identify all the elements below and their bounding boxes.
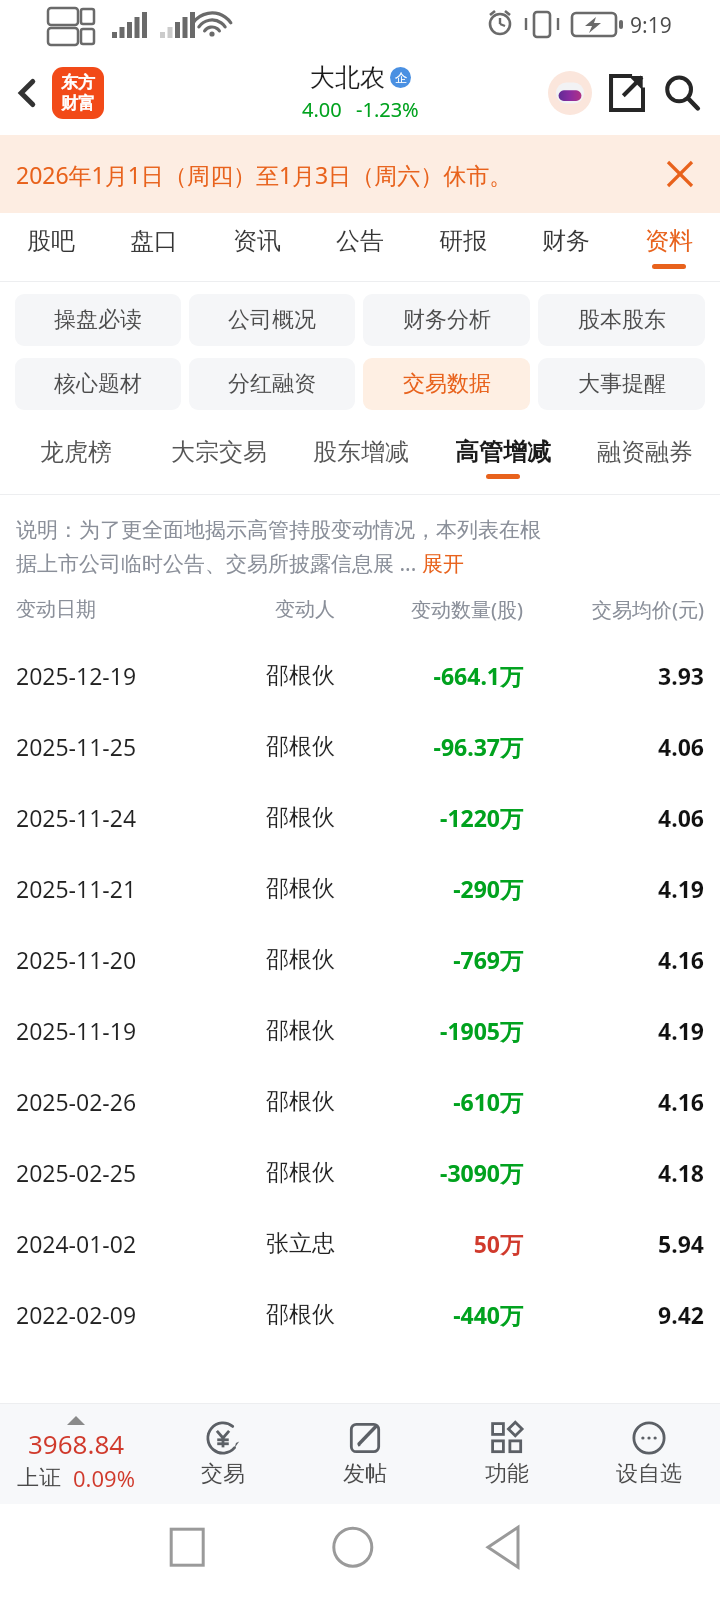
button[interactable]: 2024-01-02: [0, 1208, 720, 1279]
button[interactable]: 功能: [436, 1404, 578, 1504]
staticText: 大宗交易: [171, 437, 267, 467]
button[interactable]: 公告: [308, 213, 411, 281]
staticText: 50万: [335, 1228, 523, 1259]
staticText: -1.23%: [356, 96, 419, 123]
button[interactable]: 公司概况: [189, 294, 355, 346]
button[interactable]: 资料: [617, 213, 720, 281]
staticText: 3968.84: [28, 1426, 125, 1461]
staticText: 展开: [422, 551, 464, 577]
button[interactable]: 交易数据: [363, 358, 530, 410]
staticText: 邵根伙: [210, 1016, 335, 1045]
button[interactable]: 2025-11-25: [0, 711, 720, 782]
button[interactable]: 设自选: [578, 1404, 720, 1504]
staticText: -610万: [335, 1086, 523, 1117]
staticText: 9:19: [630, 11, 672, 40]
staticText: -1905万: [335, 1015, 523, 1046]
button[interactable]: 3968.84: [0, 1404, 152, 1504]
staticText: 研报: [439, 226, 487, 256]
button[interactable]: 高管增减: [432, 422, 574, 494]
staticText: 股东增减: [313, 437, 409, 467]
staticText: 4.06: [523, 802, 704, 833]
button[interactable]: 2025-12-19: [0, 640, 720, 711]
staticText: 2025-11-20: [16, 944, 210, 975]
button[interactable]: 2025-11-20: [0, 924, 720, 995]
button[interactable]: East Money: [52, 67, 104, 119]
button[interactable]: 2025-11-24: [0, 782, 720, 853]
button[interactable]: 交易: [152, 1404, 294, 1504]
staticText: -96.37万: [335, 731, 523, 762]
button[interactable]: 股本股东: [538, 294, 705, 346]
staticText: 大北农: [310, 62, 385, 93]
staticText: 9.42: [523, 1299, 704, 1330]
staticText: 高管增减: [455, 437, 551, 467]
staticText: 龙虎榜: [40, 437, 112, 467]
staticText: 财富: [61, 93, 95, 114]
button[interactable]: 大事提醒: [538, 358, 705, 410]
button[interactable]: 大宗交易: [147, 422, 290, 494]
staticText: 据上市公司临时公告、交易所披露信息展 ...: [16, 549, 422, 578]
button[interactable]: 操盘必读: [15, 294, 181, 346]
button[interactable]: 龙虎榜: [4, 422, 147, 494]
staticText: 邵根伙: [210, 1087, 335, 1116]
staticText: 邵根伙: [210, 945, 335, 974]
button[interactable]: 股东增减: [290, 422, 432, 494]
staticText: -1220万: [335, 802, 523, 833]
staticText: 邵根伙: [210, 874, 335, 903]
staticText: 4.06: [523, 731, 704, 762]
staticText: 2025-02-26: [16, 1086, 210, 1117]
button[interactable]: 2025-11-21: [0, 853, 720, 924]
staticText: 交易: [201, 1460, 245, 1488]
staticText: 操盘必读: [54, 306, 142, 334]
staticText: 企: [395, 70, 407, 85]
button[interactable]: Assistant: [542, 65, 598, 121]
staticText: 股吧: [27, 226, 75, 256]
staticText: 2025-11-24: [16, 802, 210, 833]
button[interactable]: 2022-02-09: [0, 1279, 720, 1350]
staticText: 公司概况: [228, 306, 316, 334]
staticText: 财务分析: [403, 306, 491, 334]
staticText: 上证: [17, 1464, 61, 1492]
button[interactable]: 财务: [514, 213, 617, 281]
button[interactable]: 2025-11-19: [0, 995, 720, 1066]
staticText: 2022-02-09: [16, 1299, 210, 1330]
staticText: 资料: [645, 226, 693, 256]
staticText: 邵根伙: [210, 732, 335, 761]
button[interactable]: 发帖: [294, 1404, 436, 1504]
button[interactable]: 融资融券: [574, 422, 716, 494]
button[interactable]: 资讯: [205, 213, 308, 281]
staticText: -769万: [335, 944, 523, 975]
staticText: 3.93: [523, 660, 704, 691]
staticText: 2025-12-19: [16, 660, 210, 691]
button[interactable]: Close: [656, 150, 704, 198]
button[interactable]: 2025-02-25: [0, 1137, 720, 1208]
button[interactable]: 展开: [422, 551, 464, 577]
staticText: 邵根伙: [210, 1158, 335, 1187]
button[interactable]: Search: [654, 65, 710, 121]
staticText: 变动数量(股): [335, 596, 523, 623]
staticText: 盘口: [130, 226, 178, 256]
staticText: -664.1万: [335, 660, 523, 691]
staticText: 资讯: [233, 226, 281, 256]
staticText: 交易数据: [403, 370, 491, 398]
button[interactable]: 财务分析: [363, 294, 530, 346]
staticText: 张立忠: [210, 1229, 335, 1258]
staticText: 功能: [485, 1460, 529, 1488]
button[interactable]: 盘口: [102, 213, 205, 281]
staticText: 发帖: [343, 1460, 387, 1488]
staticText: 0.09%: [73, 1463, 135, 1493]
button[interactable]: 核心题材: [15, 358, 181, 410]
button[interactable]: 股吧: [0, 213, 102, 281]
staticText: 4.19: [523, 1015, 704, 1046]
staticText: 分红融资: [228, 370, 316, 398]
button[interactable]: Share: [598, 65, 654, 121]
staticText: 变动人: [210, 597, 335, 622]
button[interactable]: 分红融资: [189, 358, 355, 410]
button[interactable]: 研报: [411, 213, 514, 281]
button[interactable]: 2025-02-26: [0, 1066, 720, 1137]
staticText: 2026年1月1日（周四）至1月3日（周六）休市。: [16, 159, 513, 190]
staticText: -290万: [335, 873, 523, 904]
button[interactable]: Back: [0, 65, 56, 121]
staticText: 设自选: [616, 1460, 682, 1488]
staticText: 2025-11-25: [16, 731, 210, 762]
staticText: 变动日期: [16, 597, 210, 622]
